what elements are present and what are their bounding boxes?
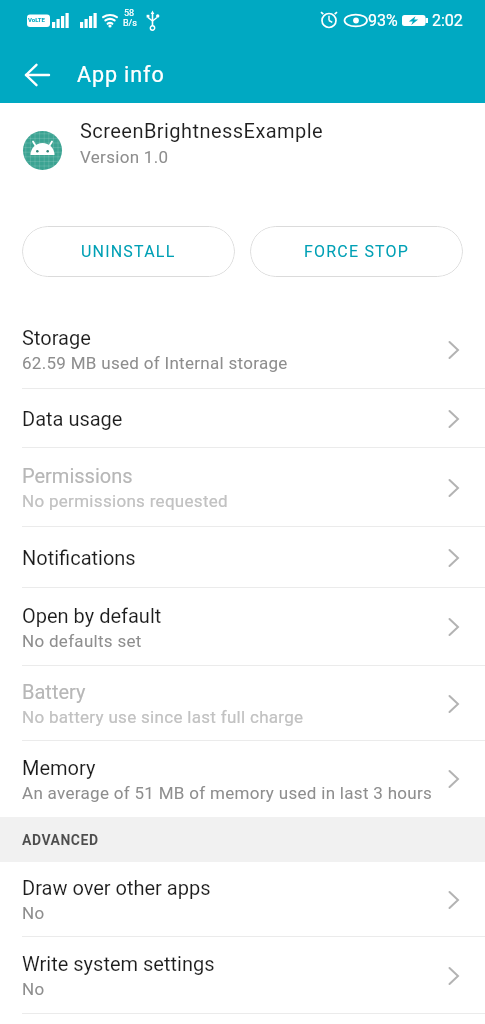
staticText: 62.59 MB used of Internal storage	[22, 353, 288, 373]
staticText: Storage	[22, 326, 91, 349]
staticText: 2:02	[432, 11, 463, 30]
button[interactable]: Notifications	[0, 527, 485, 588]
button[interactable]: Open by default	[0, 588, 485, 666]
staticText: ADVANCED	[22, 832, 99, 848]
staticText: FORCE STOP	[304, 242, 410, 261]
staticText: Draw over other apps	[22, 876, 211, 899]
staticText: Write system settings	[22, 952, 215, 975]
staticText: UNINSTALL	[81, 242, 176, 261]
staticText: Battery	[22, 680, 86, 703]
staticText: B/s	[123, 18, 137, 29]
staticText: ScreenBrightnessExample	[80, 119, 324, 142]
staticText: Notifications	[22, 546, 136, 569]
button[interactable]: Write system settings	[0, 937, 485, 1014]
staticText: No defaults set	[22, 631, 142, 651]
staticText: No	[22, 903, 45, 923]
staticText: No permissions requested	[22, 491, 228, 511]
staticText: VoLTE	[28, 16, 45, 23]
staticText: 93%	[368, 11, 398, 30]
button[interactable]: UNINSTALL	[22, 226, 235, 277]
button[interactable]: FORCE STOP	[250, 226, 463, 277]
staticText: Permissions	[22, 464, 133, 487]
staticText: App info	[77, 62, 165, 87]
button[interactable]: Permissions	[0, 448, 485, 527]
button[interactable]: Draw over other apps	[0, 862, 485, 937]
staticText: No	[22, 979, 45, 999]
staticText: An average of 51 MB of memory used in la…	[22, 783, 433, 803]
button[interactable]: Data usage	[0, 389, 485, 448]
staticText: 58	[124, 8, 135, 19]
button[interactable]: Battery	[0, 666, 485, 741]
staticText: Data usage	[22, 407, 123, 430]
button[interactable]	[25, 64, 50, 86]
staticText: No battery use since last full charge	[22, 707, 304, 727]
button[interactable]: Memory	[0, 741, 485, 817]
staticText: Version 1.0	[80, 147, 169, 167]
staticText: Memory	[22, 756, 96, 779]
button[interactable]: Storage	[0, 310, 485, 389]
staticText: Open by default	[22, 604, 162, 627]
